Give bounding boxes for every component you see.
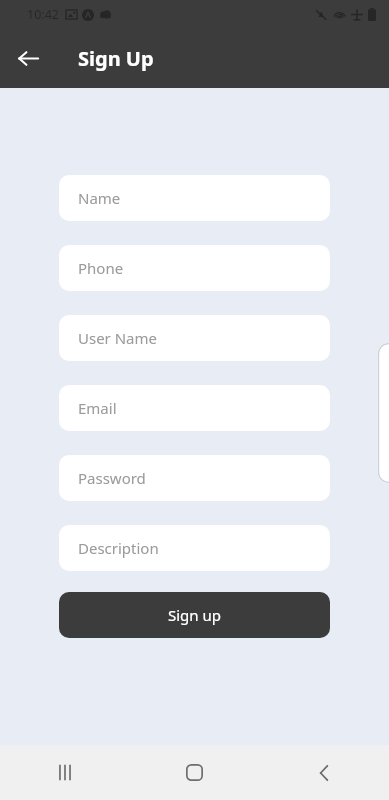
button[interactable]: Recent apps — [0, 745, 129, 800]
staticText: Phone — [78, 258, 124, 278]
staticText: Password — [78, 468, 146, 488]
staticText: Description — [78, 538, 159, 558]
staticText: Sign Up — [78, 45, 154, 72]
button[interactable]: Password — [59, 455, 330, 501]
staticText: Name — [78, 188, 121, 208]
button[interactable]: Description — [59, 525, 330, 571]
button[interactable]: Home — [129, 745, 259, 800]
staticText: User Name — [78, 328, 158, 348]
button[interactable]: Phone — [59, 245, 330, 291]
button[interactable]: Back — [6, 36, 50, 80]
staticText: 10:42 — [27, 6, 59, 23]
button[interactable]: Email — [59, 385, 330, 431]
button[interactable]: User Name — [59, 315, 330, 361]
staticText: Email — [78, 398, 117, 418]
button[interactable]: Sign up — [59, 592, 330, 638]
staticText: Sign up — [168, 605, 221, 625]
button[interactable]: Name — [59, 175, 330, 221]
button[interactable]: Back — [259, 745, 389, 800]
